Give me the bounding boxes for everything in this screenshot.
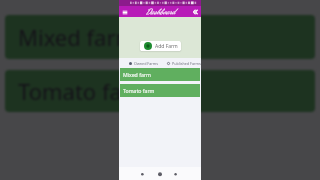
staticText: Tomato farm [18, 76, 152, 106]
button[interactable]: Owned Farms [129, 61, 159, 66]
button[interactable]: Published Farms [167, 61, 201, 66]
button[interactable]: Open navigation menu [122, 9, 128, 15]
staticText: Tomato farm [123, 87, 155, 94]
button[interactable]: Tomato farm [120, 84, 200, 97]
staticText: Dashboard [146, 7, 176, 16]
staticText: Published Farms [172, 61, 201, 66]
staticText: Owned Farms [134, 61, 159, 66]
button[interactable]: Add Farm [140, 41, 181, 51]
staticText: Mixed farm [123, 71, 151, 78]
staticText: Add Farm [155, 43, 178, 50]
staticText: Mixed farm [18, 22, 137, 52]
button[interactable]: Mixed farm [120, 68, 200, 81]
button[interactable]: Collapse [192, 9, 198, 15]
